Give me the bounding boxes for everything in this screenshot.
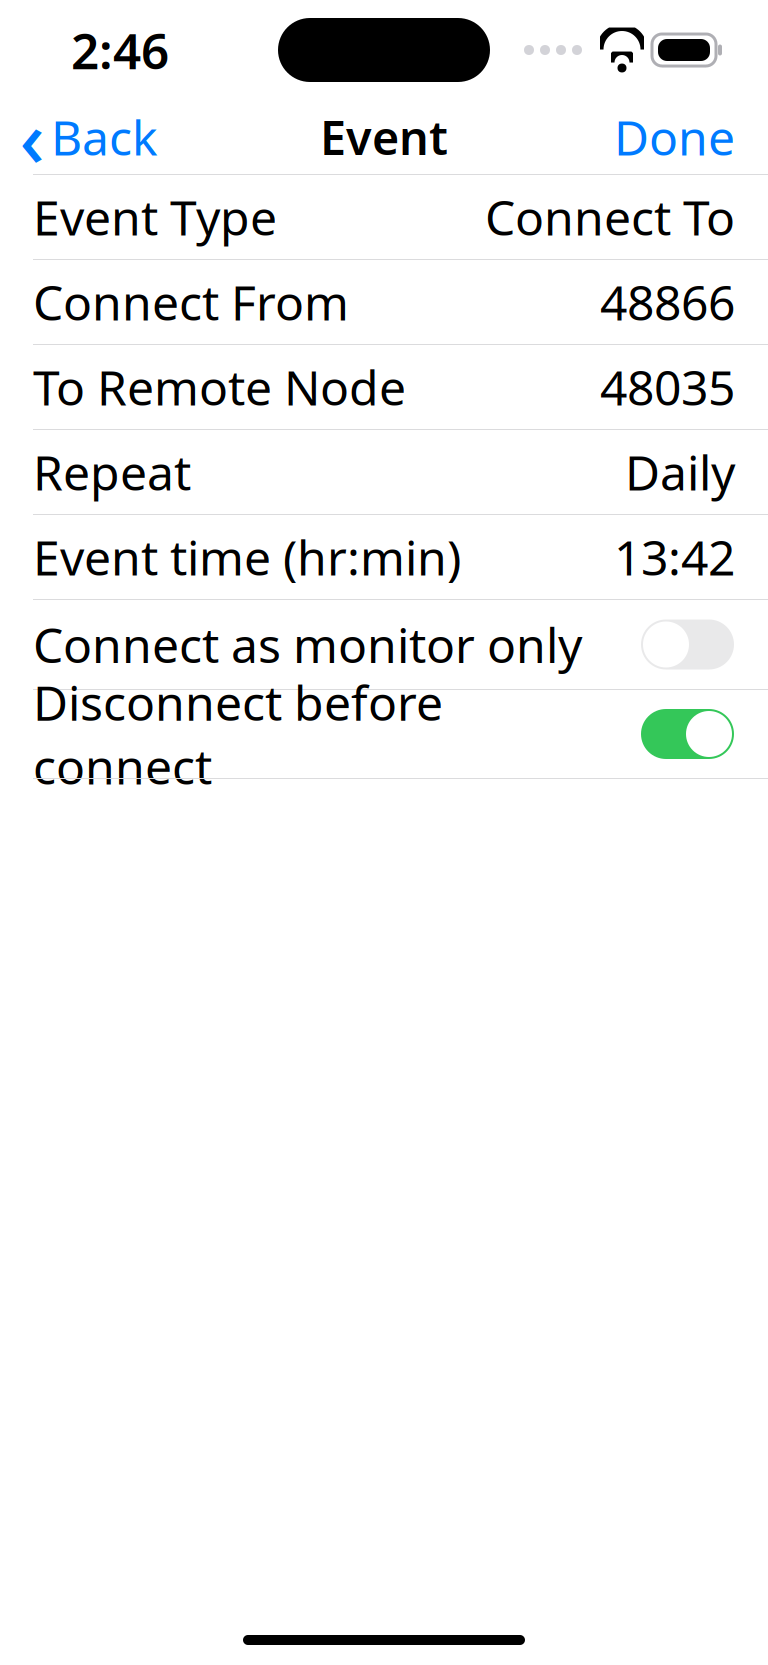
button[interactable]: Done bbox=[600, 93, 768, 181]
button[interactable]: Repeat bbox=[0, 430, 768, 514]
staticText: 48035 bbox=[600, 355, 735, 419]
button[interactable]: Disconnect before connect bbox=[0, 690, 768, 778]
staticText: Daily bbox=[625, 440, 735, 504]
button[interactable]: Event time (hr:min) bbox=[0, 515, 768, 599]
staticText: Back bbox=[51, 105, 158, 169]
staticText: 2:46 bbox=[71, 17, 169, 83]
button[interactable]: Connect From bbox=[0, 260, 768, 344]
button[interactable]: ‹ bbox=[0, 93, 172, 181]
staticText: Connect From bbox=[33, 270, 349, 334]
staticText: ‹ bbox=[19, 86, 44, 188]
staticText: Connect as monitor only bbox=[33, 613, 582, 676]
button[interactable]: Event Type bbox=[0, 175, 768, 259]
staticText: Disconnect before connect bbox=[33, 670, 443, 798]
staticText: Done bbox=[614, 105, 735, 169]
staticText: Connect To bbox=[485, 185, 735, 249]
staticText: Event Type bbox=[33, 185, 277, 249]
button[interactable]: To Remote Node bbox=[0, 345, 768, 429]
staticText: Event bbox=[320, 106, 448, 168]
staticText: 48866 bbox=[600, 270, 735, 334]
staticText: 13:42 bbox=[614, 525, 735, 589]
staticText: Repeat bbox=[33, 440, 191, 504]
button[interactable]: Connect as monitor only bbox=[0, 600, 768, 689]
staticText: To Remote Node bbox=[33, 355, 406, 419]
staticText: Event time (hr:min) bbox=[33, 525, 461, 589]
